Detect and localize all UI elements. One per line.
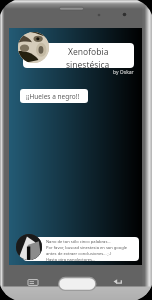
button[interactable]: Nano de tan sólo cinco palabras... xyxy=(23,237,139,261)
button[interactable]: Avatar xyxy=(18,32,49,63)
staticText: Por favor, buscad sinestesia en san goog… xyxy=(46,245,128,251)
button[interactable]: Author avatar xyxy=(16,234,42,260)
staticText: by Oskar xyxy=(113,69,134,76)
button[interactable]: Xenofobia xyxy=(23,43,134,68)
staticText: Nano de tan sólo cinco palabras... xyxy=(46,239,111,245)
staticText: antes de extraer conclusiones... ;-) xyxy=(46,251,112,257)
button[interactable]: ¡¡Hueles a negro!! xyxy=(20,89,88,103)
staticText: sinestésica xyxy=(66,59,110,68)
staticText: Xenofobia xyxy=(68,46,109,58)
staticText: Hasta otra nanolectores... xyxy=(46,257,96,261)
staticText: ¡¡Hueles a negro!! xyxy=(26,92,80,101)
